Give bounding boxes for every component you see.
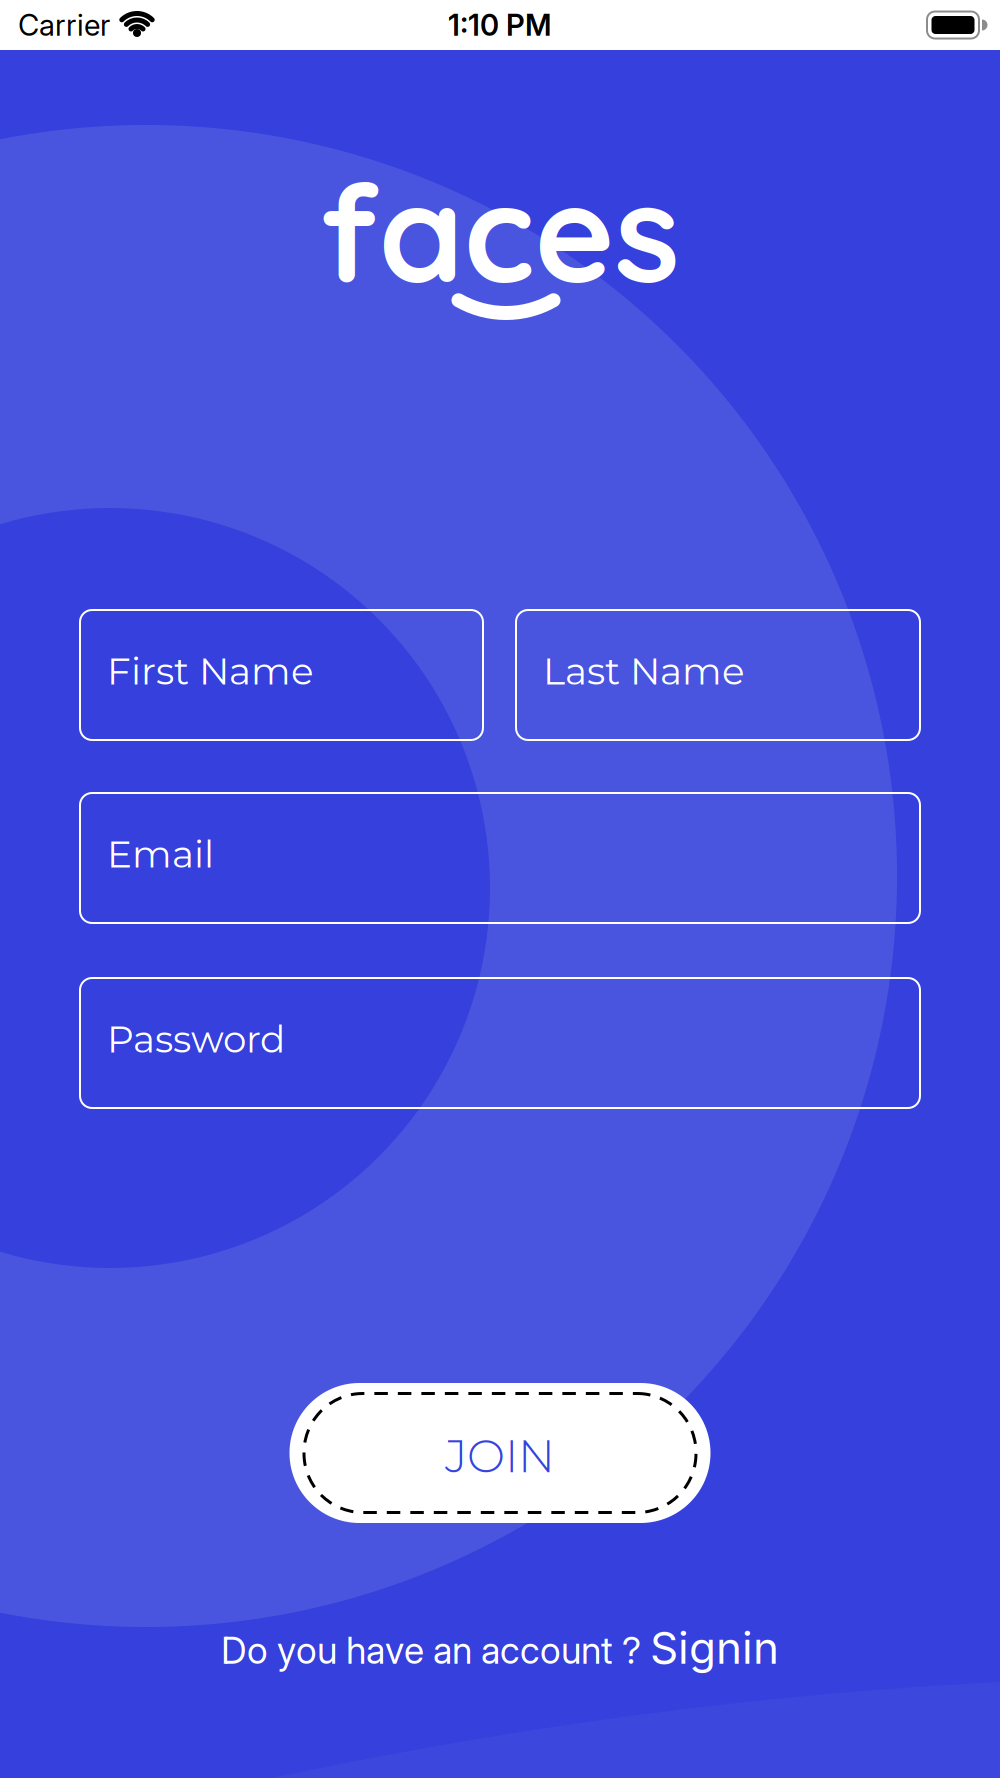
button[interactable]: JOIN [289,1383,710,1523]
button[interactable]: First Name [80,610,483,740]
staticText: Password [107,1016,285,1062]
staticText: 1:10 PM [448,7,552,43]
staticText: Last Name [543,648,745,694]
button[interactable]: Email [80,793,920,923]
staticText: Do you have an account ? [221,1628,641,1672]
button[interactable]: Signin [650,1621,779,1674]
staticText: Signin [650,1621,779,1674]
button[interactable]: Password [80,978,920,1108]
staticText: Email [107,831,214,877]
button[interactable]: Last Name [516,610,920,740]
staticText: faces [319,146,680,316]
staticText: Carrier [18,7,110,43]
staticText: First Name [107,648,314,694]
staticText: JOIN [445,1428,555,1484]
